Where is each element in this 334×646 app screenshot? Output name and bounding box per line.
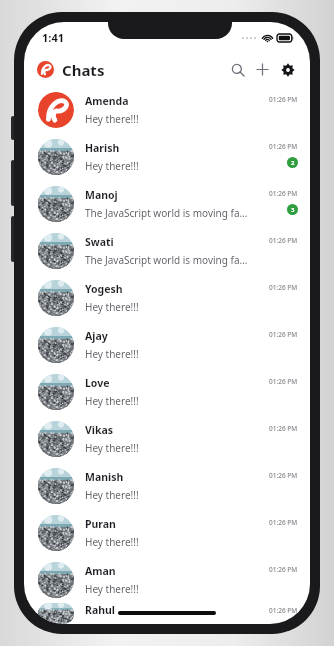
staticText: 01:26 PM [269, 142, 298, 151]
button[interactable]: Aman [24, 556, 310, 603]
button[interactable]: Settings [277, 59, 298, 80]
button[interactable]: Vikas [24, 415, 310, 462]
staticText: Aman [85, 564, 116, 578]
staticText: Hey there!!! [85, 535, 139, 549]
button[interactable]: Search [227, 59, 248, 80]
button[interactable]: Love [24, 368, 310, 415]
staticText: Hey there!!! [85, 159, 139, 173]
staticText: 01:26 PM [269, 565, 298, 574]
staticText: Puran [85, 517, 116, 531]
staticText: 2 [291, 159, 295, 167]
button[interactable]: Ajay [24, 321, 310, 368]
staticText: Yogesh [85, 282, 123, 296]
staticText: 01:26 PM [269, 606, 298, 615]
button[interactable]: Harish [24, 133, 310, 180]
staticText: Vikas [85, 423, 114, 437]
staticText: Hey there!!! [85, 488, 139, 502]
staticText: Harish [85, 141, 120, 155]
staticText: Hey there!!! [85, 441, 139, 455]
button[interactable]: New chat [252, 59, 273, 80]
staticText: 01:26 PM [269, 236, 298, 245]
button[interactable]: Manoj [24, 180, 310, 227]
staticText: 01:26 PM [269, 283, 298, 292]
staticText: 01:26 PM [269, 424, 298, 433]
staticText: 1:41 [42, 30, 64, 45]
staticText: 01:26 PM [269, 377, 298, 386]
staticText: Love [85, 376, 110, 390]
staticText: 01:26 PM [269, 518, 298, 527]
button[interactable]: Amenda [24, 86, 310, 133]
staticText: 01:26 PM [269, 330, 298, 339]
staticText: Chats [62, 60, 105, 80]
staticText: Hey there!!! [85, 394, 139, 408]
button[interactable]: Manish [24, 462, 310, 509]
button[interactable]: Swati [24, 227, 310, 274]
staticText: 01:26 PM [269, 95, 298, 104]
staticText: The JavaScript world is moving fast. The… [85, 206, 249, 220]
staticText: The JavaScript world is moving fast. The… [85, 253, 249, 267]
button[interactable]: Puran [24, 509, 310, 556]
staticText: Manish [85, 470, 124, 484]
staticText: 01:26 PM [269, 471, 298, 480]
staticText: Hey there!!! [85, 347, 139, 361]
staticText: Hey there!!! [85, 112, 139, 126]
staticText: Manoj [85, 188, 118, 202]
staticText: 01:26 PM [269, 189, 298, 198]
staticText: Amenda [85, 94, 129, 108]
staticText: Rahul [85, 603, 115, 617]
staticText: Hey there!!! [85, 582, 139, 596]
staticText: Ajay [85, 329, 108, 343]
button[interactable]: Rahul [24, 603, 310, 624]
staticText: Hey there!!! [85, 300, 139, 314]
button[interactable]: Yogesh [24, 274, 310, 321]
staticText: 3 [291, 206, 295, 214]
staticText: Swati [85, 235, 114, 249]
